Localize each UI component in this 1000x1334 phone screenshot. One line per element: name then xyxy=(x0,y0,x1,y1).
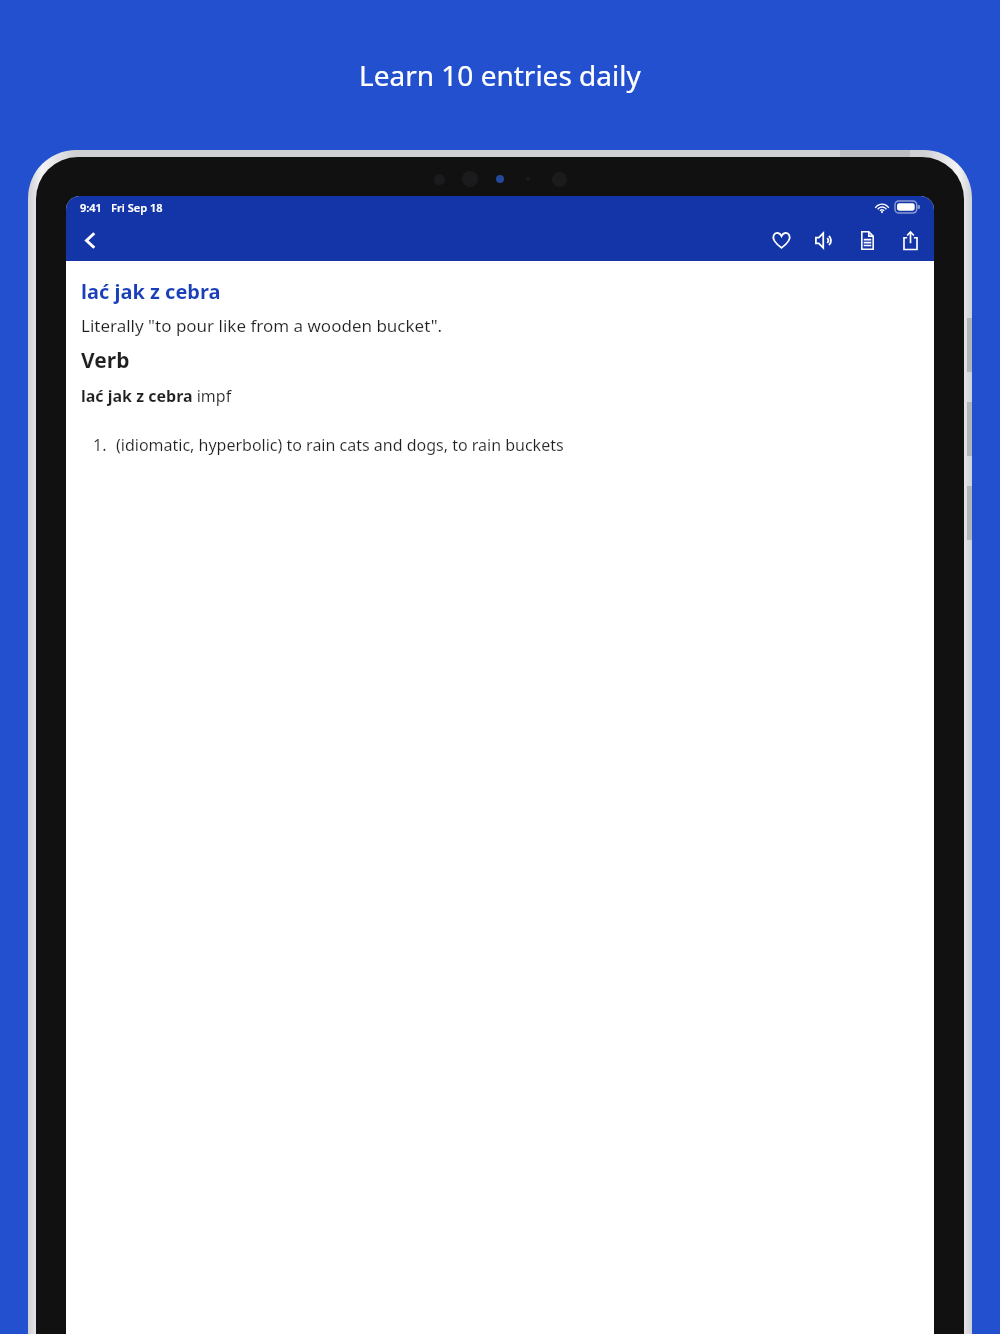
staticText: (idiomatic, hyperbolic) to rain cats and… xyxy=(116,434,564,456)
button[interactable]: Document xyxy=(850,223,884,257)
staticText: 9:41 xyxy=(80,200,102,215)
staticText: 1. xyxy=(93,434,107,456)
staticText: Literally "to pour like from a wooden bu… xyxy=(81,314,443,337)
button[interactable]: Back xyxy=(70,220,110,260)
staticText: lać jak z cebra xyxy=(81,278,221,305)
button[interactable]: Favorite xyxy=(764,223,798,257)
staticText: Verb xyxy=(81,346,130,375)
staticText: lać jak z cebra impf xyxy=(81,385,232,407)
staticText: Learn 10 entries daily xyxy=(359,56,641,94)
button[interactable]: Pronounce xyxy=(807,223,841,257)
button[interactable]: Share xyxy=(893,223,927,257)
staticText: Fri Sep 18 xyxy=(111,200,163,215)
